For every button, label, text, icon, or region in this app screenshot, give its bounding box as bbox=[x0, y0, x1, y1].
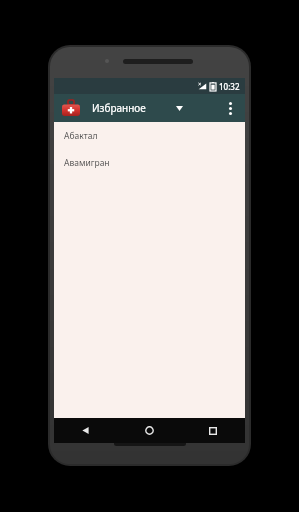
button[interactable]: Back bbox=[54, 418, 117, 443]
button[interactable]: Home bbox=[117, 418, 181, 443]
button[interactable]: Авамигран bbox=[54, 149, 245, 176]
staticText: 10:32 bbox=[219, 81, 240, 92]
staticText: Авамигран bbox=[64, 157, 110, 169]
button[interactable]: App logo bbox=[60, 97, 82, 119]
button[interactable]: Избранное bbox=[92, 94, 219, 122]
staticText: Избранное bbox=[92, 101, 146, 115]
button[interactable]: Абактал bbox=[54, 122, 245, 149]
button[interactable]: More options bbox=[219, 94, 241, 122]
staticText: Абактал bbox=[64, 130, 98, 142]
button[interactable]: Recent apps bbox=[181, 418, 245, 443]
